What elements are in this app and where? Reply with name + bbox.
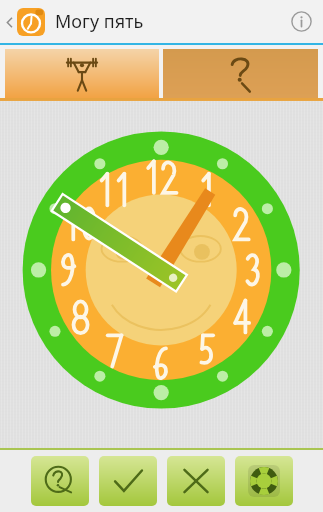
button[interactable]: Hint	[31, 456, 89, 506]
button[interactable]: Exercise tab	[5, 49, 159, 98]
staticText: Могу пять	[55, 9, 144, 34]
button[interactable]: Back	[0, 8, 47, 36]
button[interactable]: Help	[235, 456, 293, 506]
button[interactable]: Accept	[99, 456, 157, 506]
button[interactable]: Info	[280, 0, 323, 43]
button[interactable]: Question tab	[163, 49, 318, 98]
button[interactable]: Reject	[167, 456, 225, 506]
